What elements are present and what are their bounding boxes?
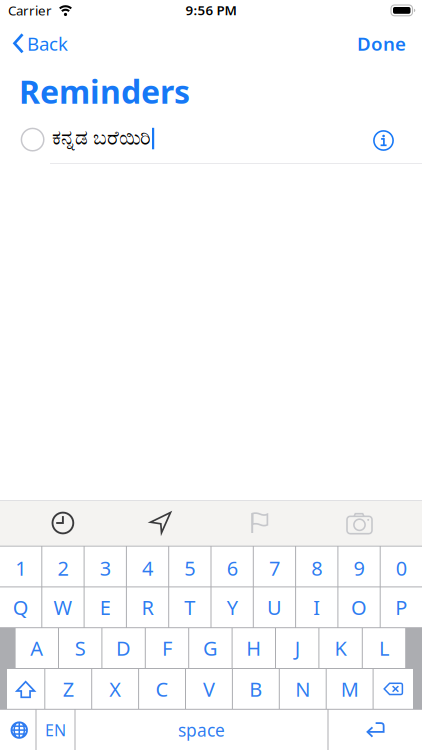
staticText: 1 <box>15 555 26 581</box>
staticText: Q <box>13 594 29 621</box>
button[interactable]: Complete <box>21 128 45 152</box>
staticText: EN <box>45 719 66 741</box>
staticText: S <box>75 635 86 661</box>
staticText: ಕನ್ನಡ ಬರೆಯಿರಿ <box>52 129 151 148</box>
button[interactable]: 1 <box>0 547 41 586</box>
staticText: Done <box>357 31 406 56</box>
staticText: 0 <box>396 555 407 581</box>
staticText: R <box>141 594 153 621</box>
staticText: W <box>53 594 72 621</box>
button[interactable]: M <box>327 669 373 709</box>
button[interactable]: 5 <box>169 547 210 586</box>
staticText: 9:56 PM <box>185 1 236 19</box>
button[interactable]: Done <box>357 31 406 56</box>
button[interactable]: Details <box>373 130 394 151</box>
staticText: 5 <box>184 555 195 581</box>
button[interactable]: Delete <box>374 669 413 709</box>
staticText: 6 <box>227 555 238 581</box>
staticText: 4 <box>142 555 153 581</box>
button[interactable]: Back <box>13 31 68 56</box>
staticText: B <box>249 676 262 702</box>
button[interactable]: I <box>296 587 337 627</box>
button[interactable]: 6 <box>211 547 253 586</box>
staticText: I <box>313 594 320 621</box>
staticText: G <box>203 635 218 661</box>
button[interactable]: Send <box>149 511 172 534</box>
button[interactable]: U <box>254 587 295 627</box>
staticText: O <box>351 594 367 621</box>
button[interactable]: 0 <box>381 547 422 586</box>
button[interactable]: P <box>381 587 422 627</box>
staticText: F <box>162 635 172 661</box>
staticText: J <box>295 635 300 661</box>
button[interactable]: EN <box>36 710 74 750</box>
button[interactable]: Recent <box>51 511 74 534</box>
staticText: P <box>395 594 407 621</box>
button[interactable]: 4 <box>127 547 168 586</box>
button[interactable]: H <box>233 628 275 668</box>
staticText: U <box>267 594 282 621</box>
staticText: space <box>178 719 225 742</box>
staticText: V <box>203 676 215 702</box>
staticText: D <box>116 635 131 661</box>
button[interactable]: X <box>92 669 138 709</box>
staticText: Reminders <box>19 70 190 112</box>
staticText: Y <box>227 594 238 621</box>
button[interactable]: W <box>42 587 84 627</box>
button[interactable]: 8 <box>296 547 337 586</box>
button[interactable]: V <box>186 669 232 709</box>
staticText: 9 <box>354 555 365 581</box>
staticText: M <box>341 676 359 702</box>
staticText: 3 <box>100 555 111 581</box>
staticText: Carrier <box>8 1 52 19</box>
button[interactable]: R <box>127 587 168 627</box>
button[interactable]: Y <box>211 587 253 627</box>
button[interactable]: L <box>363 628 405 668</box>
button[interactable]: Camera <box>347 512 372 535</box>
button[interactable]: T <box>169 587 210 627</box>
button[interactable]: K <box>319 628 362 668</box>
button[interactable]: A <box>16 628 58 668</box>
button[interactable]: N <box>280 669 326 709</box>
button[interactable]: 3 <box>85 547 126 586</box>
button[interactable]: Flag <box>251 511 269 534</box>
button[interactable]: D <box>102 628 145 668</box>
button[interactable]: E <box>85 587 126 627</box>
staticText: H <box>246 635 261 661</box>
button[interactable]: J <box>276 628 318 668</box>
button[interactable]: 2 <box>42 547 84 586</box>
button[interactable]: G <box>189 628 232 668</box>
staticText: C <box>155 676 168 702</box>
staticText: L <box>379 635 389 661</box>
staticText: Z <box>63 676 74 702</box>
button[interactable]: Shift <box>7 669 44 709</box>
button[interactable]: S <box>59 628 101 668</box>
staticText: T <box>184 594 195 621</box>
button[interactable]: B <box>233 669 279 709</box>
button[interactable]: Next keyboard <box>0 710 35 750</box>
staticText: 2 <box>57 555 68 581</box>
staticText: E <box>100 594 111 621</box>
button[interactable]: space <box>75 710 327 750</box>
staticText: A <box>30 635 43 661</box>
staticText: Back <box>27 31 68 56</box>
button[interactable]: 9 <box>338 547 380 586</box>
staticText: K <box>335 635 347 661</box>
button[interactable]: F <box>146 628 188 668</box>
button[interactable]: Return <box>328 710 422 750</box>
staticText: 8 <box>311 555 322 581</box>
button[interactable]: Q <box>0 587 41 627</box>
button[interactable]: O <box>338 587 380 627</box>
button[interactable]: C <box>139 669 185 709</box>
staticText: X <box>109 676 121 702</box>
staticText: 7 <box>269 555 280 581</box>
button[interactable]: 7 <box>254 547 295 586</box>
button[interactable]: Z <box>45 669 91 709</box>
staticText: N <box>295 676 310 702</box>
